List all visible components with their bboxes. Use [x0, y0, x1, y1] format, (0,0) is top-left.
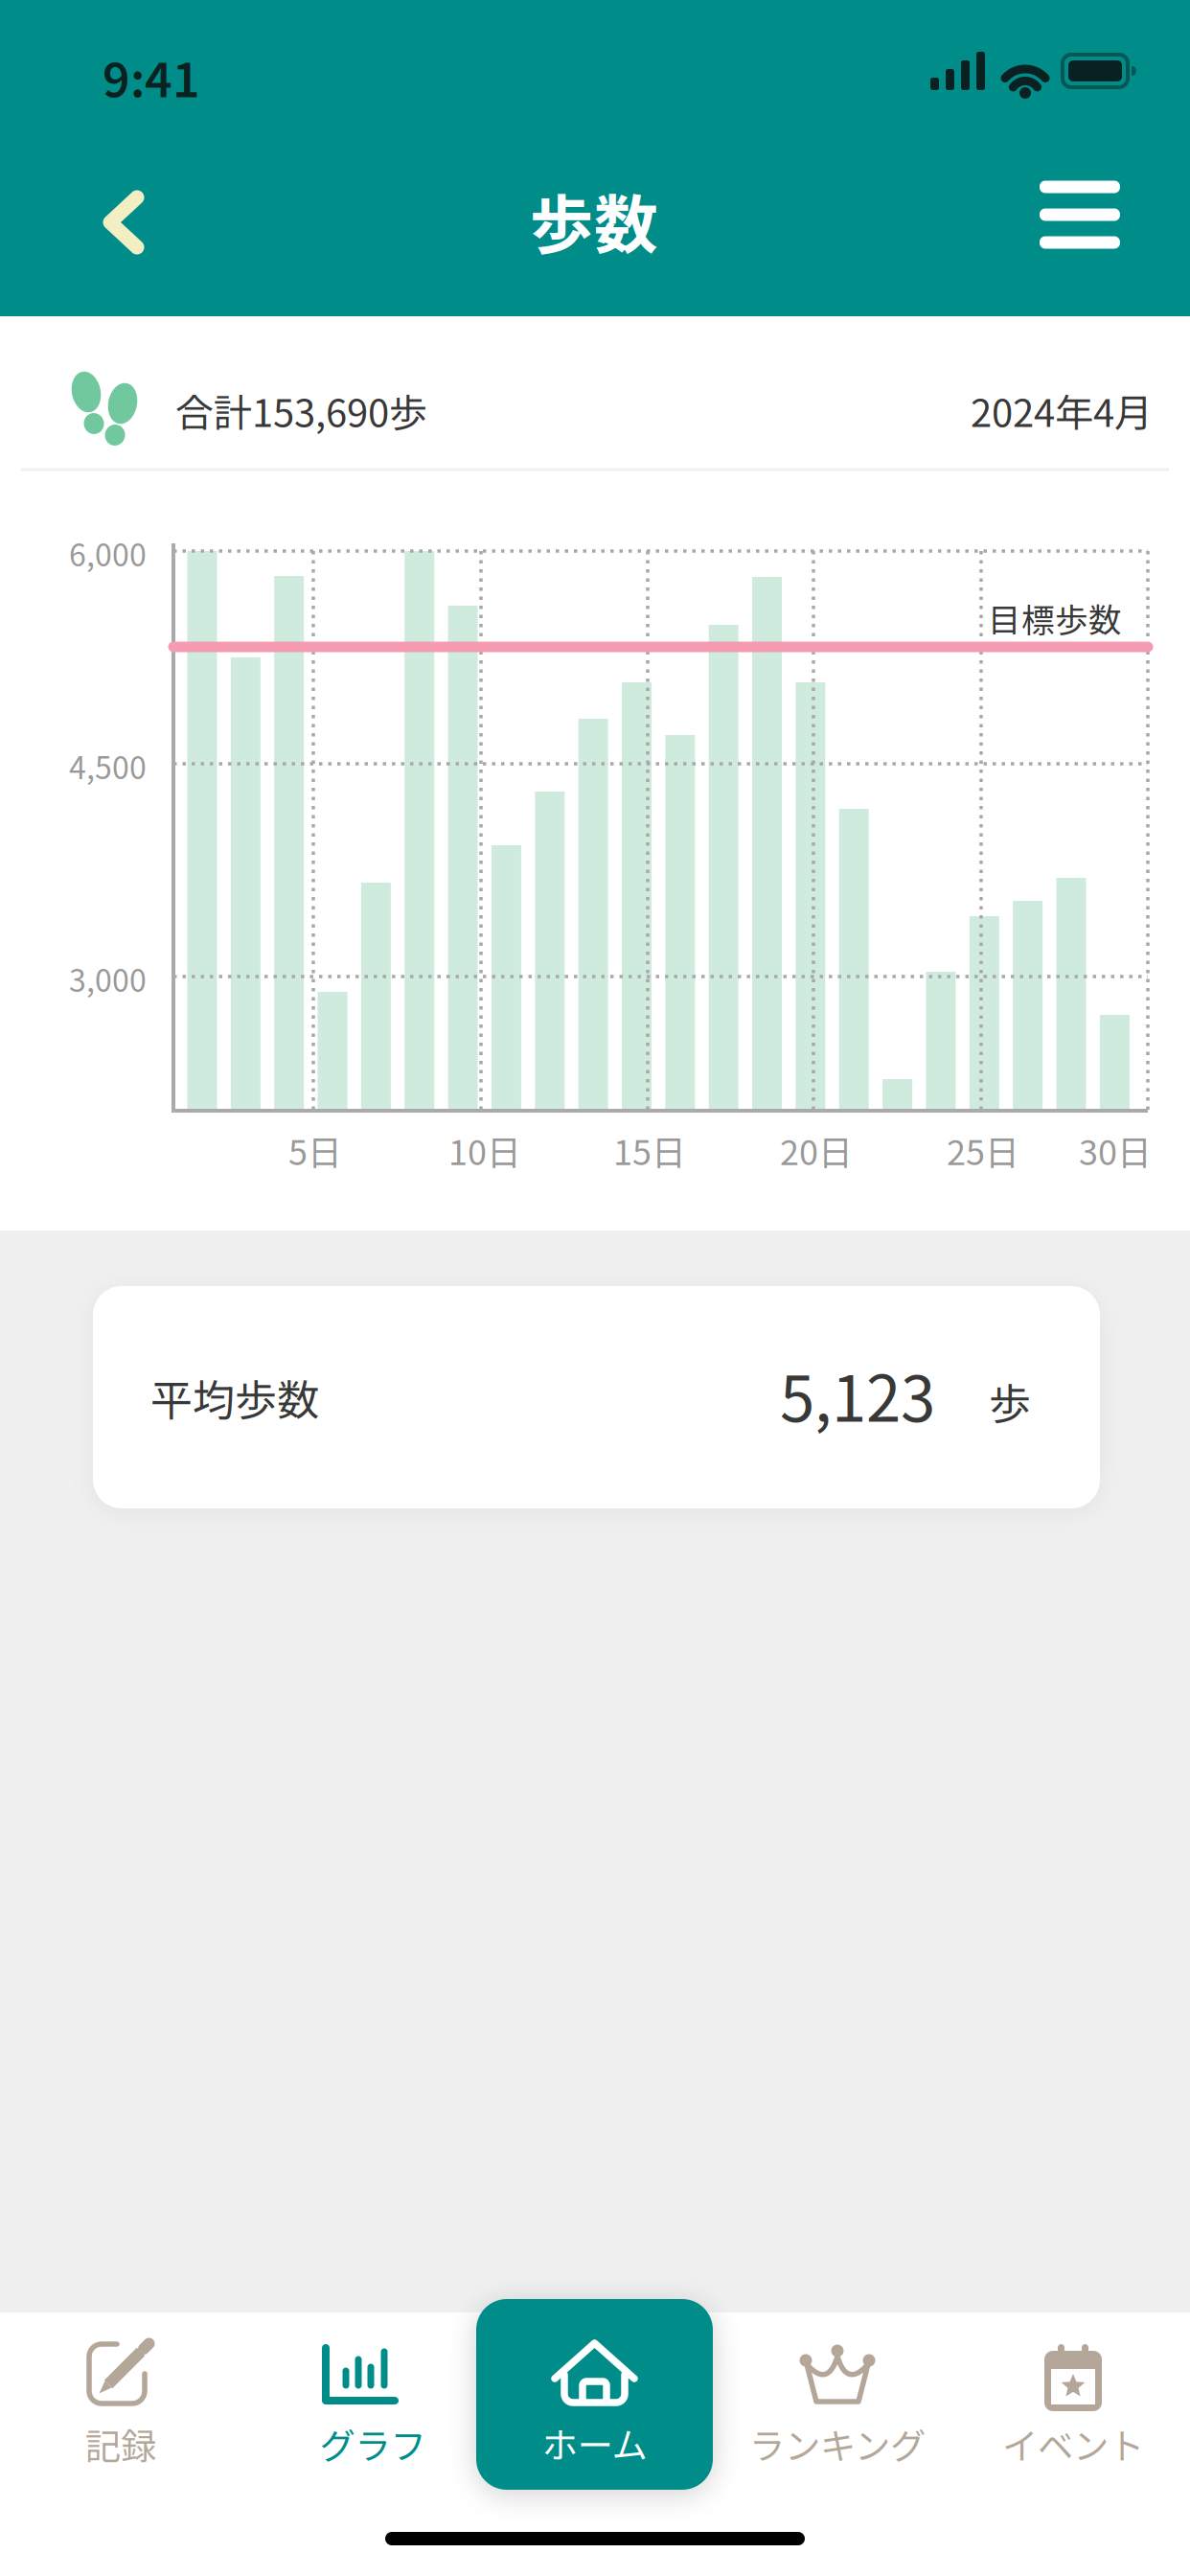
staticText: 15日	[613, 1125, 686, 1175]
button[interactable]: ランキング	[733, 2314, 934, 2458]
staticText: 2024年4月	[971, 382, 1153, 438]
staticText: ホーム	[542, 2417, 647, 2469]
staticText: グラフ	[320, 2418, 426, 2470]
button[interactable]: Back	[103, 190, 145, 255]
staticText: 9:41	[103, 42, 200, 111]
staticText: 10日	[448, 1125, 521, 1175]
staticText: 歩数	[530, 174, 658, 267]
staticText: 目標歩数	[988, 594, 1122, 642]
staticText: イベント	[1002, 2418, 1144, 2470]
button[interactable]: グラフ	[276, 2314, 445, 2458]
staticText: 5日	[288, 1125, 342, 1175]
staticText: 合計153,690歩	[175, 382, 427, 438]
staticText: 歩	[989, 1371, 1031, 1432]
staticText: 3,000	[69, 956, 147, 1001]
button[interactable]: Menu	[1032, 172, 1128, 258]
button[interactable]: イベント	[982, 2314, 1164, 2458]
staticText: 記録	[85, 2418, 156, 2470]
button[interactable]: 記録	[45, 2314, 196, 2458]
staticText: 5,123	[780, 1349, 935, 1440]
button[interactable]: 平均歩数	[93, 1286, 1100, 1508]
staticText: 平均歩数	[150, 1367, 319, 1428]
staticText: ランキング	[749, 2418, 926, 2470]
staticText: 30日	[1079, 1125, 1152, 1175]
staticText: 20日	[780, 1125, 853, 1175]
staticText: 25日	[947, 1125, 1019, 1175]
staticText: 6,000	[69, 531, 147, 575]
staticText: 4,500	[69, 743, 147, 788]
button[interactable]: ホーム	[476, 2299, 713, 2490]
